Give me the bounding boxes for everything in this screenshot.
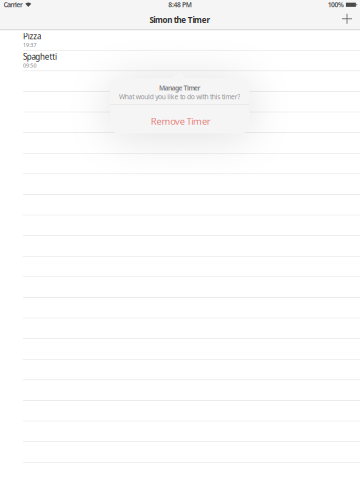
staticText: 19:37 bbox=[23, 41, 36, 48]
staticText: Pizza bbox=[23, 31, 41, 41]
button[interactable]: Pizza bbox=[0, 30, 360, 51]
staticText: Carrier bbox=[3, 0, 23, 9]
button[interactable]: Spaghetti bbox=[0, 51, 360, 71]
staticText: Spaghetti bbox=[23, 51, 57, 62]
staticText: Remove Timer bbox=[151, 115, 211, 127]
staticText: 8:48 PM bbox=[168, 0, 192, 9]
button[interactable]: Remove Timer bbox=[110, 105, 249, 133]
staticText: Simon the Timer bbox=[149, 14, 211, 25]
staticText: What would you like to do with this time… bbox=[119, 92, 240, 101]
button[interactable]: Add timer bbox=[338, 9, 355, 30]
staticText: Manage Timer bbox=[159, 83, 200, 92]
staticText: 100% bbox=[328, 0, 344, 9]
staticText: 09:50 bbox=[23, 62, 36, 69]
